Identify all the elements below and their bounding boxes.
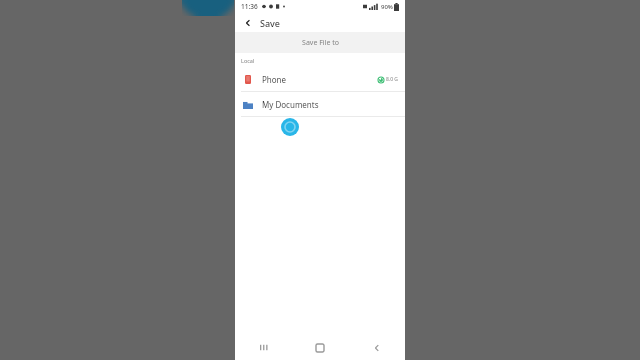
button[interactable]: Phone	[235, 67, 405, 91]
staticText: 8.0 G	[386, 76, 399, 83]
staticText: 90%	[381, 3, 393, 11]
staticText: Phone	[262, 74, 287, 85]
staticText: Local	[241, 57, 255, 64]
staticText: 11:36	[241, 2, 258, 11]
button[interactable]: My Documents	[235, 92, 405, 116]
button[interactable]: Home	[291, 335, 348, 360]
button[interactable]: Recents	[235, 335, 291, 360]
button[interactable]: Back	[240, 15, 256, 31]
button[interactable]: Back	[348, 335, 405, 360]
staticText: Save File to	[302, 38, 339, 48]
staticText: Save	[260, 17, 281, 29]
staticText: My Documents	[262, 99, 319, 110]
